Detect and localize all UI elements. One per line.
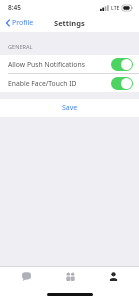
staticText: Enable Face/Touch ID [8, 79, 77, 88]
staticText: 8:45 [8, 3, 21, 12]
button[interactable]: Enable Face/Touch ID [0, 74, 139, 92]
staticText: Settings [54, 18, 85, 28]
staticText: GENERAL [8, 43, 33, 51]
staticText: Allow Push Notifications [8, 60, 85, 69]
staticText: Profile [12, 18, 34, 28]
staticText: LTE [111, 4, 120, 11]
button[interactable]: Save [0, 99, 139, 117]
staticText: Save [62, 103, 78, 113]
button[interactable]: Toggle [111, 58, 133, 71]
button[interactable]: Toggle [111, 77, 133, 90]
button[interactable]: Profile [96, 270, 130, 296]
button[interactable]: Allow Push Notifications [0, 55, 139, 73]
button[interactable]: Friends [53, 270, 87, 296]
button[interactable]: Profile [4, 16, 36, 30]
button[interactable]: Messages [9, 270, 43, 296]
